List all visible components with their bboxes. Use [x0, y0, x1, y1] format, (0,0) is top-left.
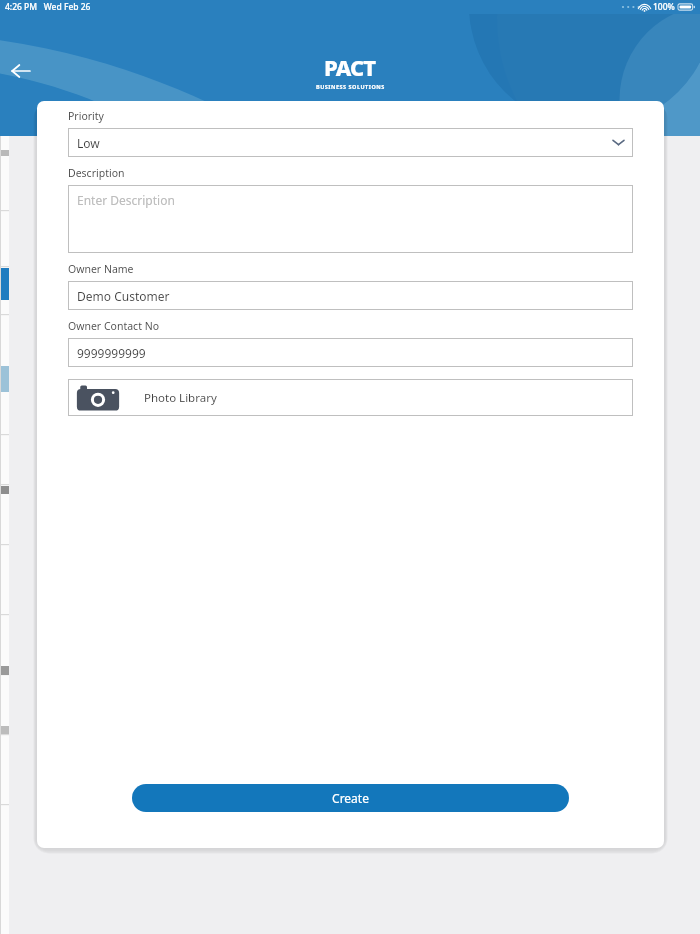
staticText: Photo Library	[144, 390, 217, 406]
button[interactable]: Create	[132, 784, 569, 812]
button[interactable]: Enter Description	[68, 185, 633, 253]
button[interactable]: 9999999999	[68, 338, 633, 367]
staticText: 100%	[653, 1, 675, 13]
staticText: Priority	[68, 109, 104, 123]
staticText: Owner Name	[68, 262, 134, 276]
button[interactable]: Photo Library	[68, 379, 633, 416]
staticText: Description	[68, 166, 125, 180]
button[interactable]: Low	[68, 128, 633, 157]
staticText: Low	[77, 135, 100, 151]
button[interactable]: Demo Customer	[68, 281, 633, 310]
button[interactable]: Back	[4, 54, 38, 88]
staticText: Owner Contact No	[68, 319, 159, 333]
staticText: 4:26 PM Wed Feb 26	[5, 1, 91, 13]
staticText: BUSINESS SOLUTIONS	[316, 83, 385, 90]
staticText: PACT	[324, 52, 376, 82]
staticText: Demo Customer	[77, 288, 170, 304]
staticText: 9999999999	[77, 345, 146, 361]
staticText: Create	[332, 790, 369, 806]
staticText: Enter Description	[77, 192, 175, 208]
